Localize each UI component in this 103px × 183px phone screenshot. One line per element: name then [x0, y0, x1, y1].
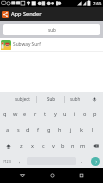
- staticText: k: [80, 126, 83, 134]
- button[interactable]: .: [76, 154, 88, 168]
- button[interactable]: Subway Surf: [0, 38, 103, 52]
- button[interactable]: subject: [8, 92, 37, 106]
- staticText: r: [34, 110, 37, 118]
- button[interactable]: k: [76, 122, 87, 138]
- button[interactable]: w: [10, 106, 20, 122]
- staticText: Sub: [47, 96, 55, 102]
- button[interactable]: ,: [13, 154, 27, 168]
- button[interactable]: Recents: [73, 168, 89, 183]
- staticText: o: [83, 110, 87, 118]
- button[interactable]: b: [58, 138, 68, 154]
- button[interactable]: f: [33, 122, 43, 138]
- button[interactable]: g: [43, 122, 54, 138]
- staticText: subject: [15, 96, 30, 102]
- staticText: 7:55: [93, 1, 102, 7]
- staticText: t: [44, 110, 47, 118]
- staticText: x: [31, 142, 34, 150]
- staticText: j: [70, 126, 72, 134]
- staticText: i: [74, 110, 76, 118]
- button[interactable]: m: [78, 138, 88, 154]
- button[interactable]: Home: [44, 168, 60, 183]
- button[interactable]: h: [54, 122, 65, 138]
- button[interactable]: u: [60, 106, 70, 122]
- button[interactable]: v: [48, 138, 58, 154]
- button[interactable]: l: [87, 122, 98, 138]
- button[interactable]: subh: [65, 92, 86, 106]
- button[interactable]: i: [70, 106, 80, 122]
- staticText: sub: [48, 27, 56, 33]
- staticText: Subway Surf: [13, 41, 41, 48]
- staticText: y: [54, 110, 57, 118]
- button[interactable]: q: [0, 106, 10, 122]
- staticText: l: [92, 126, 94, 134]
- button[interactable]: Backspace: [88, 138, 103, 154]
- staticText: subh: [70, 96, 81, 102]
- staticText: w: [13, 110, 18, 118]
- button[interactable]: d: [23, 122, 33, 138]
- staticText: m: [80, 142, 86, 150]
- staticText: d: [26, 126, 30, 134]
- button[interactable]: Sub: [37, 92, 65, 106]
- button[interactable]: Send: [88, 154, 103, 168]
- staticText: e: [23, 110, 27, 118]
- button[interactable]: ?123: [0, 154, 13, 168]
- staticText: p: [93, 110, 97, 118]
- staticText: b: [61, 142, 65, 150]
- button[interactable]: Voice input: [86, 92, 103, 106]
- staticText: a: [6, 126, 10, 134]
- button[interactable]: z: [16, 138, 27, 154]
- staticText: .: [81, 158, 83, 165]
- button[interactable]: t: [40, 106, 50, 122]
- button[interactable]: y: [50, 106, 60, 122]
- button[interactable]: Shift: [0, 138, 16, 154]
- staticText: s: [17, 126, 20, 134]
- button[interactable]: c: [38, 138, 48, 154]
- staticText: v: [52, 142, 55, 150]
- staticText: h: [58, 126, 62, 134]
- button[interactable]: x: [27, 138, 38, 154]
- button[interactable]: n: [68, 138, 78, 154]
- button[interactable]: r: [30, 106, 40, 122]
- button[interactable]: p: [90, 106, 100, 122]
- staticText: ,: [19, 158, 21, 165]
- staticText: c: [42, 142, 45, 150]
- button[interactable]: s: [13, 122, 23, 138]
- staticText: u: [63, 110, 67, 118]
- button[interactable]: e: [20, 106, 30, 122]
- staticText: q: [3, 110, 7, 118]
- button[interactable]: o: [80, 106, 90, 122]
- button[interactable]: a: [3, 122, 13, 138]
- button[interactable]: Back: [14, 168, 30, 183]
- staticText: z: [20, 142, 23, 150]
- staticText: g: [47, 126, 51, 134]
- staticText: ?123: [3, 159, 11, 164]
- staticText: n: [71, 142, 75, 150]
- staticText: f: [37, 126, 39, 134]
- button[interactable]: j: [65, 122, 76, 138]
- staticText: App Sender: [11, 10, 42, 18]
- button[interactable]: sub: [3, 24, 100, 35]
